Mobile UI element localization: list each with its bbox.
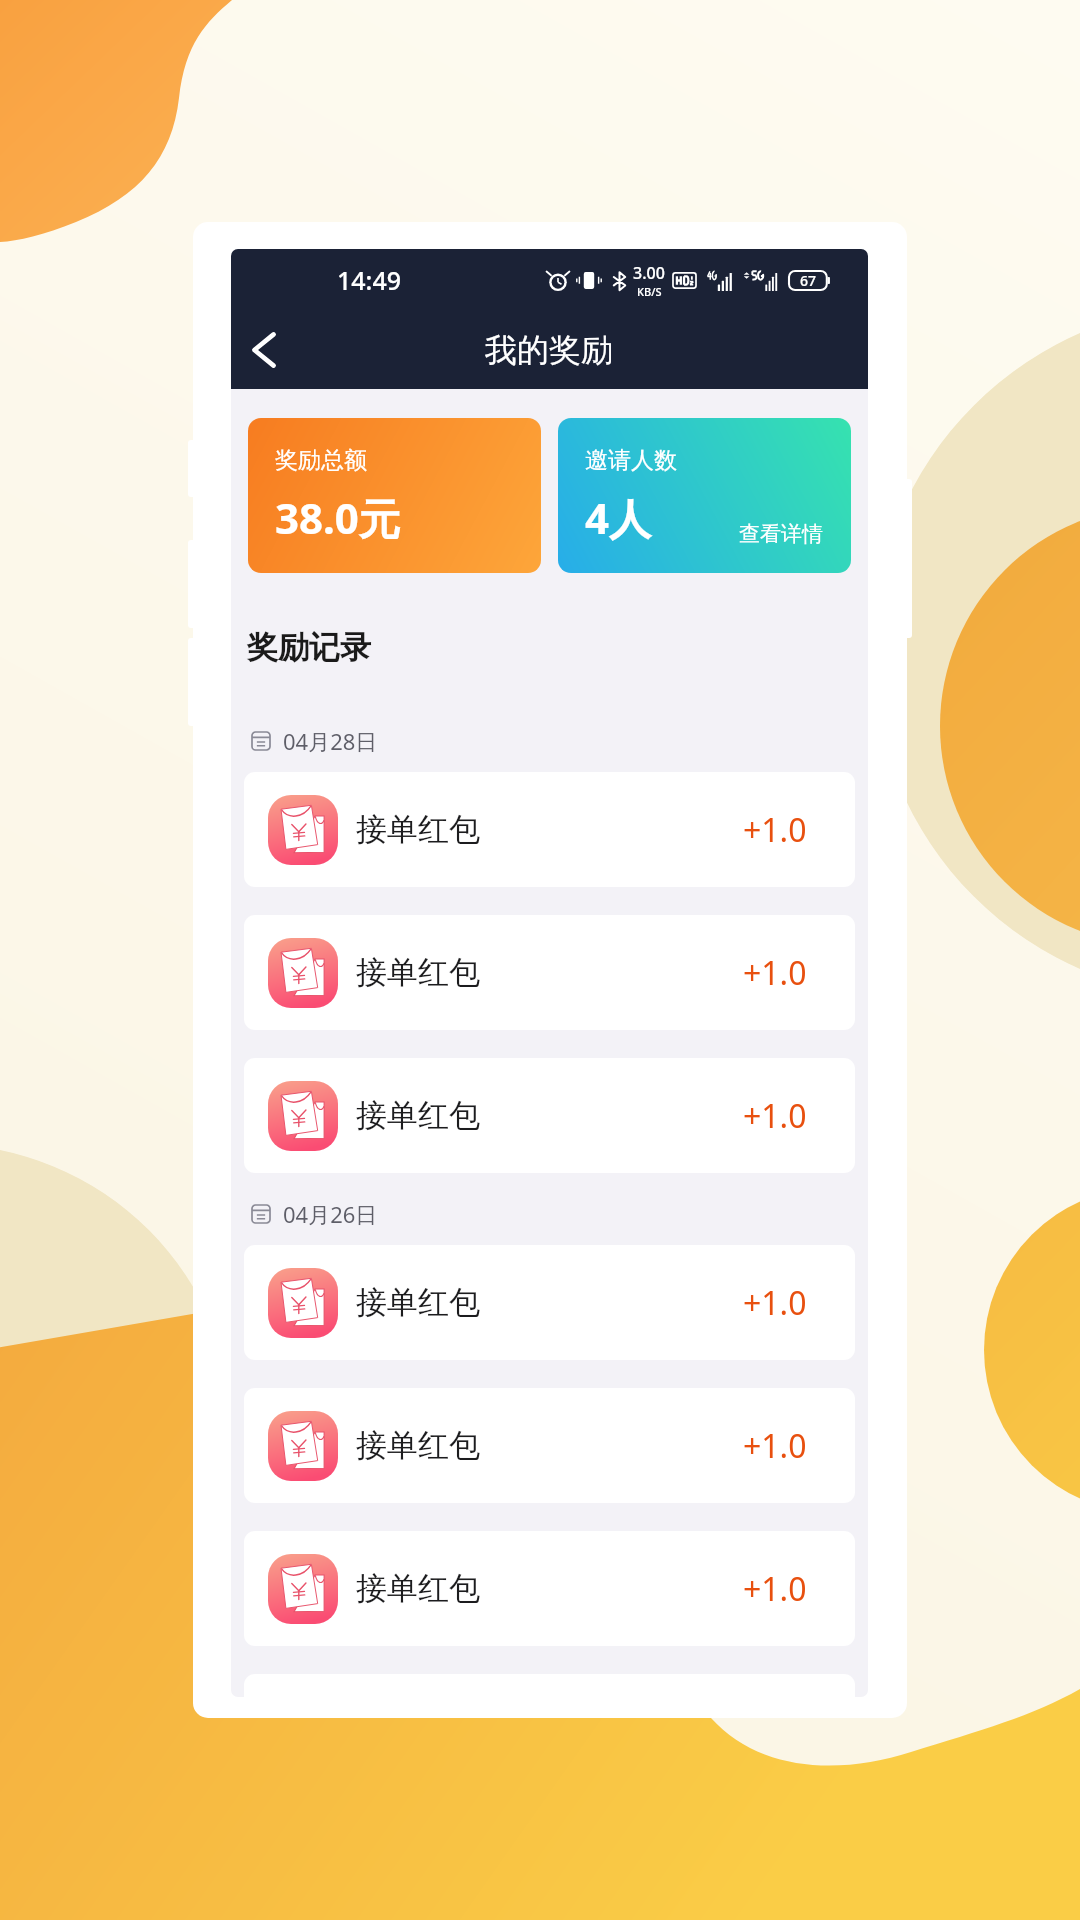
staticText: 接单红包 [356,1283,480,1322]
button[interactable]: 接单红包 [244,772,855,887]
button[interactable]: 奖励总额 [248,418,541,573]
staticText: +1.0 [743,1094,807,1138]
staticText: 04月26日 [283,1199,378,1229]
staticText: 67 [800,271,817,290]
staticText: 接单红包 [356,810,480,849]
staticText: +1.0 [743,1281,807,1325]
staticText: KB/S [637,284,662,299]
staticText: 接单红包 [356,953,480,992]
staticText: +1.0 [743,1567,807,1611]
staticText: 邀请人数 [585,446,677,475]
staticText: 接单红包 [356,1096,480,1135]
staticText: 3.00 [633,262,665,284]
staticText: +1.0 [743,951,807,995]
staticText: +1.0 [743,808,807,852]
staticText: +1.0 [743,1424,807,1468]
staticText: 38.0元 [275,489,401,546]
button[interactable]: 接单红包 [244,1388,855,1503]
staticText: 04月28日 [283,726,378,756]
staticText: 接单红包 [356,1569,480,1608]
button[interactable]: 接单红包 [244,1531,855,1646]
staticText: 4人 [585,489,652,546]
button[interactable]: Back [231,311,297,389]
staticText: 我的奖励 [485,330,613,370]
button[interactable]: 接单红包 [244,915,855,1030]
staticText: 14:49 [337,263,402,297]
staticText: 查看详情 [739,521,823,547]
staticText: 奖励记录 [247,628,371,667]
staticText: 奖励总额 [275,446,367,475]
staticText: 接单红包 [356,1426,480,1465]
button[interactable]: 接单红包 [244,1058,855,1173]
button[interactable]: 邀请人数 [558,418,851,573]
button[interactable]: 接单红包 [244,1245,855,1360]
